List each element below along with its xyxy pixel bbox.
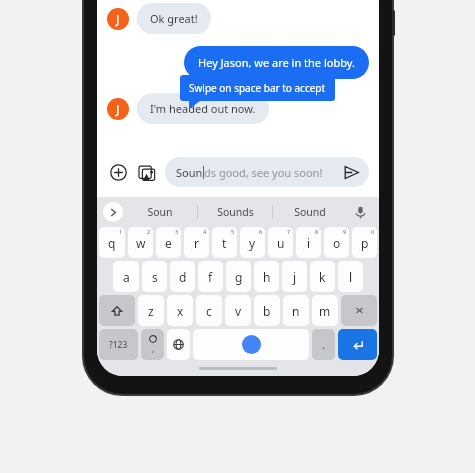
staticText: 5 <box>231 228 235 235</box>
button[interactable]: Gallery <box>136 161 158 183</box>
staticText: f <box>208 269 213 285</box>
button[interactable]: d <box>170 261 195 292</box>
button[interactable]: u <box>268 227 293 258</box>
staticText: s <box>152 269 158 285</box>
staticText: ds good, see you soon! <box>204 165 323 180</box>
staticText: l <box>349 269 353 285</box>
staticText: 8 <box>315 228 319 235</box>
staticText: Soun <box>176 165 203 180</box>
button[interactable]: v <box>225 295 251 326</box>
button[interactable]: . <box>312 329 335 360</box>
staticText: J <box>116 11 120 27</box>
button[interactable]: Swipe on space bar to accept <box>180 75 335 101</box>
button[interactable]: Emoji and comma <box>141 329 164 360</box>
staticText: Ok great! <box>150 11 198 26</box>
button[interactable]: Voice input <box>347 197 373 227</box>
button[interactable]: c <box>196 295 222 326</box>
staticText: Sounds <box>217 205 254 219</box>
staticText: J <box>116 101 120 117</box>
button[interactable]: Backspace <box>341 295 377 326</box>
button[interactable]: e <box>156 227 181 258</box>
staticText: a <box>123 269 130 285</box>
button[interactable]: Shift <box>99 295 135 326</box>
button[interactable]: Soun <box>165 157 369 187</box>
staticText: w <box>136 235 146 251</box>
staticText: Swipe on space bar to accept <box>189 81 326 95</box>
staticText: d <box>179 269 187 285</box>
button[interactable]: i <box>296 227 321 258</box>
staticText: t <box>222 235 227 251</box>
staticText: I'm headed out now. <box>150 101 256 116</box>
staticText: i <box>307 235 311 251</box>
staticText: 7 <box>287 228 291 235</box>
staticText: 1 <box>119 228 123 235</box>
staticText: . <box>322 337 325 352</box>
button[interactable]: Jason avatar <box>107 98 129 120</box>
button[interactable]: z <box>138 295 164 326</box>
button[interactable]: I'm headed out now. <box>137 93 269 124</box>
staticText: n <box>292 303 300 319</box>
staticText: c <box>206 303 212 319</box>
button[interactable]: p <box>352 227 377 258</box>
button[interactable]: f <box>198 261 223 292</box>
staticText: 9 <box>343 228 347 235</box>
staticText: u <box>277 235 285 251</box>
button[interactable]: Sound <box>273 197 347 227</box>
button[interactable]: r <box>184 227 209 258</box>
staticText: b <box>263 303 271 319</box>
button[interactable]: Sounds <box>198 197 272 227</box>
button[interactable]: x <box>167 295 193 326</box>
button[interactable]: h <box>254 261 279 292</box>
staticText: 4 <box>203 228 207 235</box>
button[interactable]: l <box>338 261 363 292</box>
button[interactable]: Ok great! <box>137 3 211 34</box>
staticText: g <box>235 269 243 285</box>
button[interactable]: t <box>212 227 237 258</box>
button[interactable]: m <box>312 295 338 326</box>
button[interactable]: Space <box>193 329 309 360</box>
button[interactable]: n <box>283 295 309 326</box>
staticText: Sound <box>294 205 326 219</box>
button[interactable]: Soun <box>123 197 197 227</box>
button[interactable]: g <box>226 261 251 292</box>
button[interactable]: Change language <box>167 329 190 360</box>
staticText: r <box>194 235 199 251</box>
staticText: Hey Jason, we are in the lobby. <box>198 55 355 70</box>
button[interactable]: Expand toolbar <box>103 202 123 222</box>
staticText: k <box>319 269 326 285</box>
button[interactable]: Add attachment <box>107 161 129 183</box>
staticText: v <box>235 303 242 319</box>
button[interactable]: k <box>310 261 335 292</box>
staticText: z <box>148 303 154 319</box>
staticText: q <box>108 235 116 251</box>
staticText: p <box>361 235 369 251</box>
other: Send <box>341 162 361 182</box>
staticText: ?123 <box>109 339 128 351</box>
button[interactable]: a <box>113 261 139 292</box>
staticText: o <box>333 235 341 251</box>
staticText: y <box>249 235 256 251</box>
staticText: e <box>165 235 172 251</box>
staticText: , <box>152 343 155 354</box>
button[interactable]: s <box>142 261 167 292</box>
staticText: Soun <box>147 205 173 219</box>
button[interactable]: Hey Jason, we are in the lobby. <box>184 46 369 79</box>
button[interactable]: y <box>240 227 265 258</box>
button[interactable]: ?123 <box>99 329 138 360</box>
staticText: 2 <box>147 228 151 235</box>
button[interactable]: q <box>99 227 125 258</box>
button[interactable]: j <box>282 261 307 292</box>
staticText: 6 <box>259 228 263 235</box>
staticText: m <box>319 303 331 319</box>
staticText: j <box>293 269 297 285</box>
button[interactable]: Jason avatar <box>107 8 129 30</box>
staticText: 3 <box>175 228 179 235</box>
staticText: 0 <box>371 228 375 235</box>
button[interactable]: Enter <box>338 329 377 360</box>
staticText: x <box>177 303 184 319</box>
button[interactable]: o <box>324 227 349 258</box>
button[interactable]: w <box>128 227 153 258</box>
button[interactable]: b <box>254 295 280 326</box>
staticText: h <box>263 269 271 285</box>
